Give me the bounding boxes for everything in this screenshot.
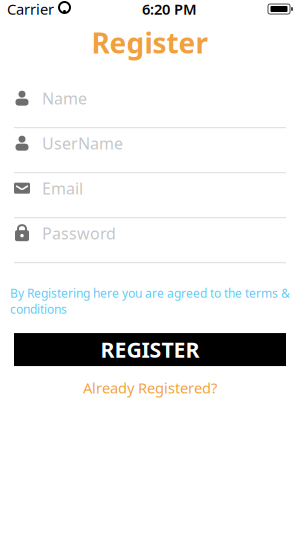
staticText: By Registering here you are agreed to th… — [10, 285, 290, 317]
button[interactable]: Password — [0, 218, 300, 263]
staticText: UserName — [42, 133, 123, 154]
staticText: 6:20 PM — [142, 0, 197, 19]
button[interactable]: REGISTER — [14, 333, 286, 366]
staticText: Email — [42, 178, 83, 199]
staticText: Register — [91, 24, 208, 61]
button[interactable]: UserName — [0, 128, 300, 173]
button[interactable]: Name — [0, 83, 300, 128]
button[interactable]: Already Registered? — [0, 375, 300, 401]
button[interactable]: By Registering here you are agreed to th… — [0, 282, 300, 320]
button[interactable]: Email — [0, 173, 300, 218]
staticText: Carrier — [7, 0, 54, 19]
staticText: Already Registered? — [83, 378, 217, 398]
staticText: Password — [42, 223, 116, 244]
staticText: REGISTER — [100, 335, 199, 364]
staticText: Name — [42, 88, 87, 109]
